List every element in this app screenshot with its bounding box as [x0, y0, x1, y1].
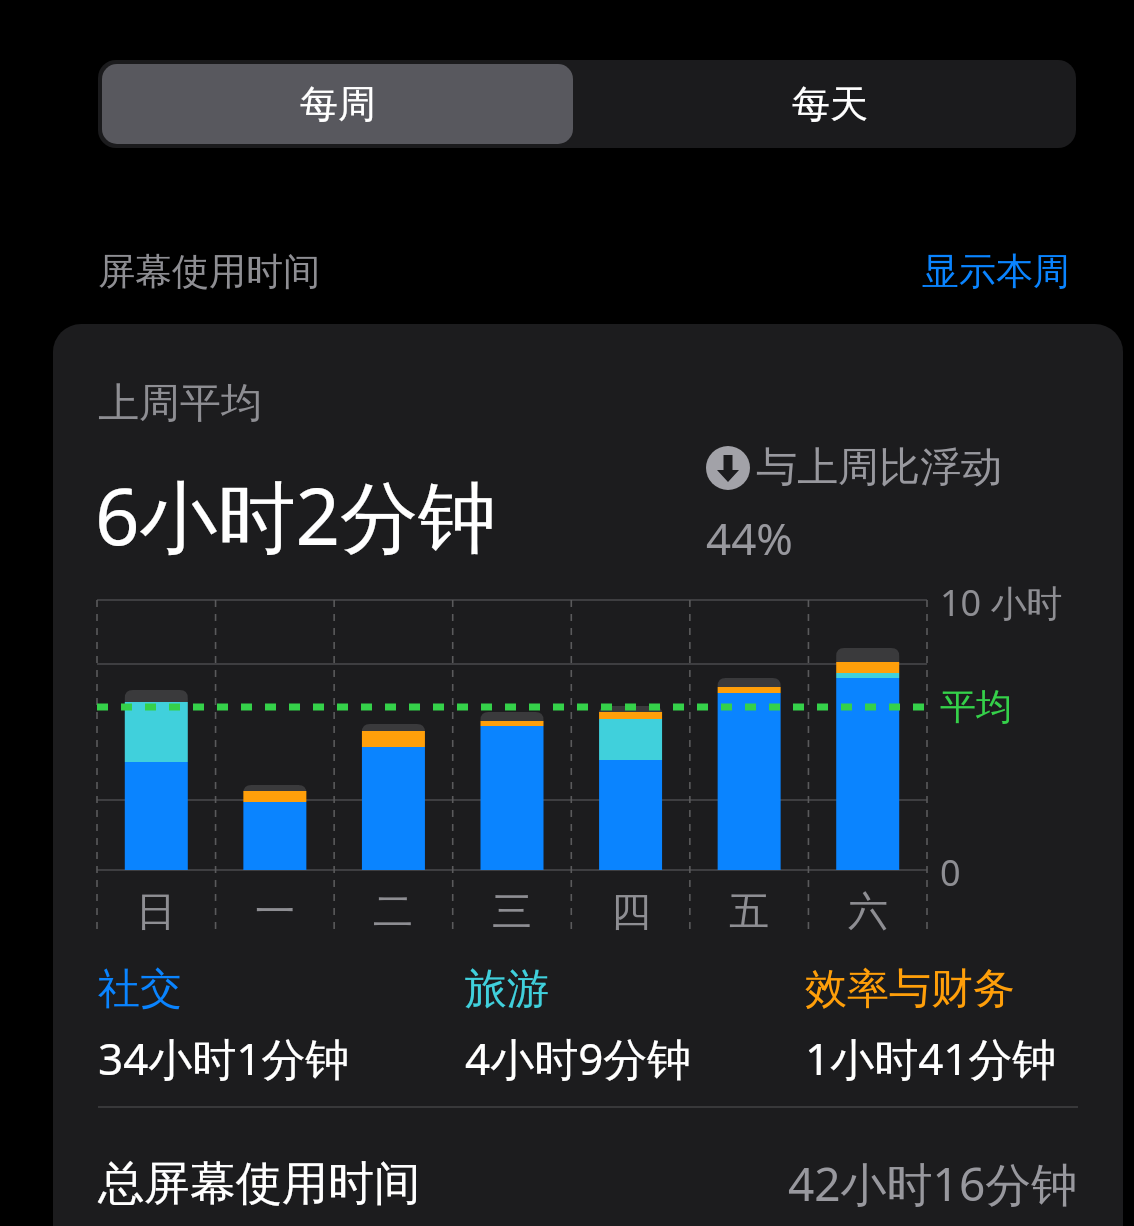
staticText: 效率与财务 [805, 963, 1015, 1016]
staticText: 1小时41分钟 [805, 1028, 1057, 1088]
staticText: 平均 [940, 684, 1012, 729]
button[interactable]: 每周 [102, 64, 573, 144]
staticText: 二 [373, 886, 413, 936]
staticText: 一 [255, 886, 295, 936]
button[interactable]: 效率与财务 [805, 963, 1078, 1088]
staticText: 四 [611, 886, 651, 936]
button[interactable] [53, 324, 1123, 1226]
staticText: 显示本周 [922, 248, 1070, 295]
other: 下降 [706, 446, 750, 490]
button[interactable]: 旅游 [465, 963, 805, 1088]
staticText: 34小时1分钟 [98, 1028, 350, 1088]
staticText: 五 [729, 886, 769, 936]
staticText: 社交 [98, 963, 182, 1016]
staticText: 总屏幕使用时间 [98, 1155, 420, 1213]
staticText: 三 [492, 886, 532, 936]
staticText: 10 小时 [940, 578, 1063, 627]
staticText: 旅游 [465, 963, 549, 1016]
staticText: 42小时16分钟 [788, 1152, 1078, 1215]
staticText: 日 [136, 886, 176, 936]
staticText: 与上周比浮动 [756, 442, 1002, 494]
staticText: 每周 [300, 80, 376, 128]
staticText: 屏幕使用时间 [98, 248, 320, 295]
staticText: 每天 [792, 80, 868, 128]
staticText: 6小时2分钟 [95, 462, 497, 569]
staticText: 0 [940, 848, 961, 897]
button[interactable]: 社交 [98, 963, 465, 1088]
staticText: 上周平均 [98, 378, 262, 430]
staticText: 六 [848, 886, 888, 936]
button[interactable]: 每天 [587, 64, 1072, 144]
staticText: 44% [706, 508, 793, 568]
staticText: 4小时9分钟 [465, 1028, 692, 1088]
button[interactable]: 显示本周 [922, 248, 1070, 295]
